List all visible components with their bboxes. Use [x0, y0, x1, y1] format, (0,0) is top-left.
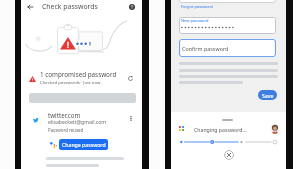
staticText: Save: [262, 92, 274, 99]
button[interactable]: Change password: [59, 139, 108, 150]
staticText: Checked passwords · Just now: [40, 79, 101, 85]
button[interactable]: Save: [258, 90, 277, 100]
staticText: Password reused: [48, 127, 84, 133]
button[interactable]: Refresh: [124, 72, 136, 84]
button[interactable]: 1 compromised password: [21, 70, 142, 86]
button[interactable]: More options: [126, 112, 136, 124]
staticText: New password: [181, 18, 209, 23]
button[interactable]: New password: [179, 17, 276, 34]
button[interactable]: twitter.com: [21, 110, 142, 135]
button[interactable]: Forgot password: [181, 4, 213, 9]
staticText: elisabeckett@gmail.com: [48, 119, 107, 126]
button[interactable]: Confirm password: [179, 39, 276, 57]
staticText: Changing password...: [194, 126, 247, 133]
button[interactable]: Account: [270, 124, 280, 134]
staticText: Confirm password: [182, 45, 229, 52]
staticText: twitter.com: [48, 111, 81, 119]
staticText: 1 compromised password: [40, 70, 117, 79]
staticText: Check passwords: [42, 2, 98, 11]
button[interactable]: Back: [24, 1, 37, 12]
button[interactable]: Help: [126, 1, 138, 12]
staticText: Change password: [62, 141, 106, 148]
button[interactable]: Close: [224, 150, 234, 160]
